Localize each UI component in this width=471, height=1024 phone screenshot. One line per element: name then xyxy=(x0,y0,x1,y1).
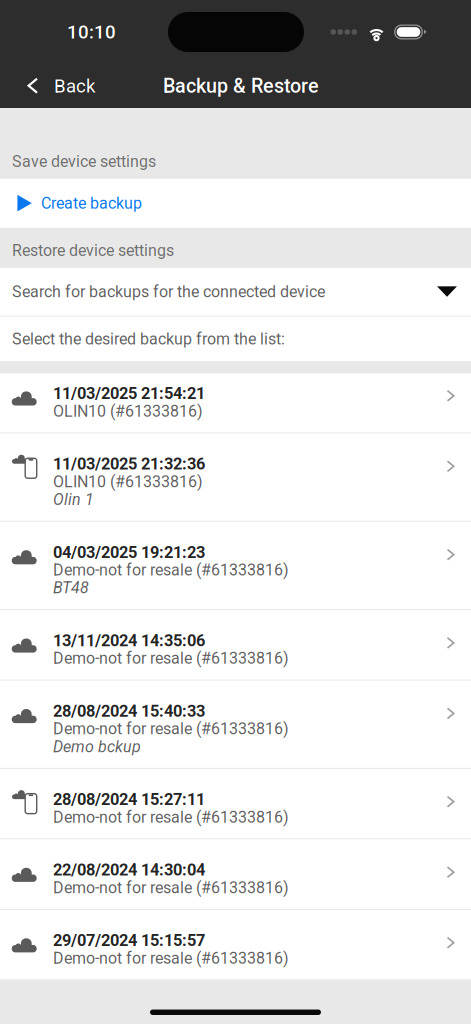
staticText: 29/07/2024 15:15:57 xyxy=(53,931,205,950)
staticText: 11/03/2025 21:54:21 xyxy=(53,384,205,403)
staticText: 22/08/2024 14:30:04 xyxy=(53,860,205,879)
staticText: Demo-not for resale (#61333816) xyxy=(53,649,289,668)
button[interactable]: 28/08/2024 15:27:11 xyxy=(0,769,471,839)
staticText: OLIN10 (#61333816) xyxy=(53,472,203,491)
button[interactable]: 11/03/2025 21:32:36 xyxy=(0,433,471,522)
staticText: 28/08/2024 15:27:11 xyxy=(53,790,205,809)
button[interactable]: 28/08/2024 15:40:33 xyxy=(0,681,471,769)
staticText: Demo-not for resale (#61333816) xyxy=(53,561,289,579)
staticText: Save device settings xyxy=(12,152,156,171)
button[interactable]: 04/03/2025 19:21:23 xyxy=(0,522,471,610)
staticText: Olin 1 xyxy=(53,490,94,509)
staticText: BT48 xyxy=(53,578,89,597)
button[interactable]: 11/03/2025 21:54:21 xyxy=(0,373,471,433)
staticText: Demo bckup xyxy=(53,737,141,756)
button[interactable]: 29/07/2024 15:15:57 xyxy=(0,910,471,980)
staticText: Back xyxy=(54,75,95,97)
button[interactable]: Back xyxy=(0,64,150,108)
button[interactable]: Create backup xyxy=(0,179,471,228)
staticText: Backup & Restore xyxy=(163,74,319,97)
staticText: Select the desired backup from the list: xyxy=(12,330,285,348)
button[interactable]: 22/08/2024 14:30:04 xyxy=(0,839,471,910)
button[interactable]: 13/11/2024 14:35:06 xyxy=(0,610,471,681)
staticText: 10:10 xyxy=(67,21,116,43)
staticText: Restore device settings xyxy=(12,241,174,260)
staticText: Demo-not for resale (#61333816) xyxy=(53,878,289,897)
staticText: 11/03/2025 21:32:36 xyxy=(53,454,205,474)
staticText: Create backup xyxy=(41,194,142,213)
staticText: OLIN10 (#61333816) xyxy=(53,402,203,421)
staticText: 13/11/2024 14:35:06 xyxy=(53,631,205,650)
staticText: 28/08/2024 15:40:33 xyxy=(53,701,205,721)
staticText: Demo-not for resale (#61333816) xyxy=(53,808,289,827)
staticText: Demo-not for resale (#61333816) xyxy=(53,719,289,738)
staticText: Search for backups for the connected dev… xyxy=(12,282,325,301)
button[interactable]: Search for backups for the connected dev… xyxy=(0,268,471,317)
staticText: 04/03/2025 19:21:23 xyxy=(53,543,205,562)
staticText: Demo-not for resale (#61333816) xyxy=(53,949,289,968)
